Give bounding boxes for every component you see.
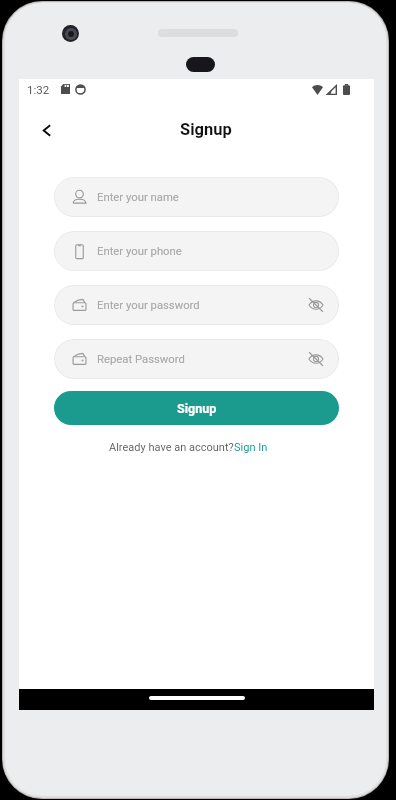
staticText: Enter your phone: [97, 245, 182, 258]
button[interactable]: Back: [31, 115, 61, 145]
staticText: Signup: [180, 120, 232, 139]
button[interactable]: Repeat Password: [54, 339, 339, 379]
button[interactable]: Enter your password: [54, 285, 339, 325]
button[interactable]: Toggle password visibility: [306, 349, 326, 369]
staticText: Sign In: [234, 441, 268, 454]
button[interactable]: Signup: [54, 391, 339, 425]
button[interactable]: Toggle password visibility: [306, 295, 326, 315]
staticText: Already have an account?: [109, 441, 234, 454]
button[interactable]: Sign In: [234, 441, 268, 454]
staticText: Repeat Password: [97, 353, 185, 366]
staticText: Enter your name: [97, 191, 179, 204]
button[interactable]: Enter your name: [54, 177, 339, 217]
button[interactable]: Enter your phone: [54, 231, 339, 271]
staticText: 1:32: [27, 83, 50, 96]
staticText: Signup: [177, 401, 217, 416]
staticText: Enter your password: [97, 299, 200, 312]
